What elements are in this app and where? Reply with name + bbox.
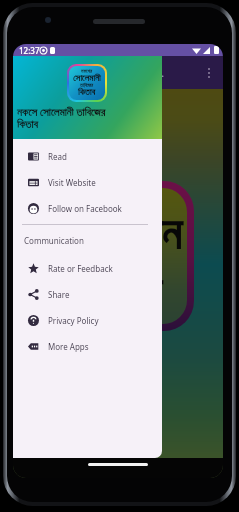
button[interactable]: Follow on Facebook bbox=[13, 195, 162, 221]
staticText: কিতাব bbox=[17, 119, 38, 130]
staticText: More Apps bbox=[48, 341, 89, 352]
staticText: সোলেমানী bbox=[73, 74, 101, 83]
button[interactable]: Visit Website bbox=[13, 169, 162, 195]
staticText: 12:37 bbox=[19, 45, 40, 56]
staticText: Read bbox=[48, 151, 67, 162]
button[interactable]: Rate or Feedback bbox=[13, 255, 162, 281]
staticText: নকসে সোলেমানী তাবিজের কি... bbox=[56, 65, 166, 80]
button[interactable]: More Apps bbox=[13, 333, 162, 359]
staticText: সোলেমানী bbox=[49, 212, 187, 304]
staticText: কিতাব bbox=[78, 88, 96, 97]
button[interactable]: Read bbox=[13, 143, 162, 169]
staticText: Rate or Feedback bbox=[48, 263, 113, 274]
staticText: Communication bbox=[24, 235, 84, 246]
staticText: Share bbox=[48, 289, 70, 300]
staticText: Follow on Facebook bbox=[48, 203, 122, 214]
staticText: তাবিজের bbox=[80, 83, 94, 88]
staticText: Privacy Policy bbox=[48, 315, 99, 326]
button[interactable]: Privacy Policy bbox=[13, 307, 162, 333]
button[interactable]: Share bbox=[13, 281, 162, 307]
staticText: কিতাব bbox=[74, 271, 162, 317]
staticText: Visit Website bbox=[48, 177, 96, 188]
staticText: নকসে সোলেমানী তাবিজের bbox=[17, 104, 106, 119]
staticText: নকশের bbox=[81, 69, 93, 74]
button[interactable]: More options bbox=[204, 64, 214, 82]
